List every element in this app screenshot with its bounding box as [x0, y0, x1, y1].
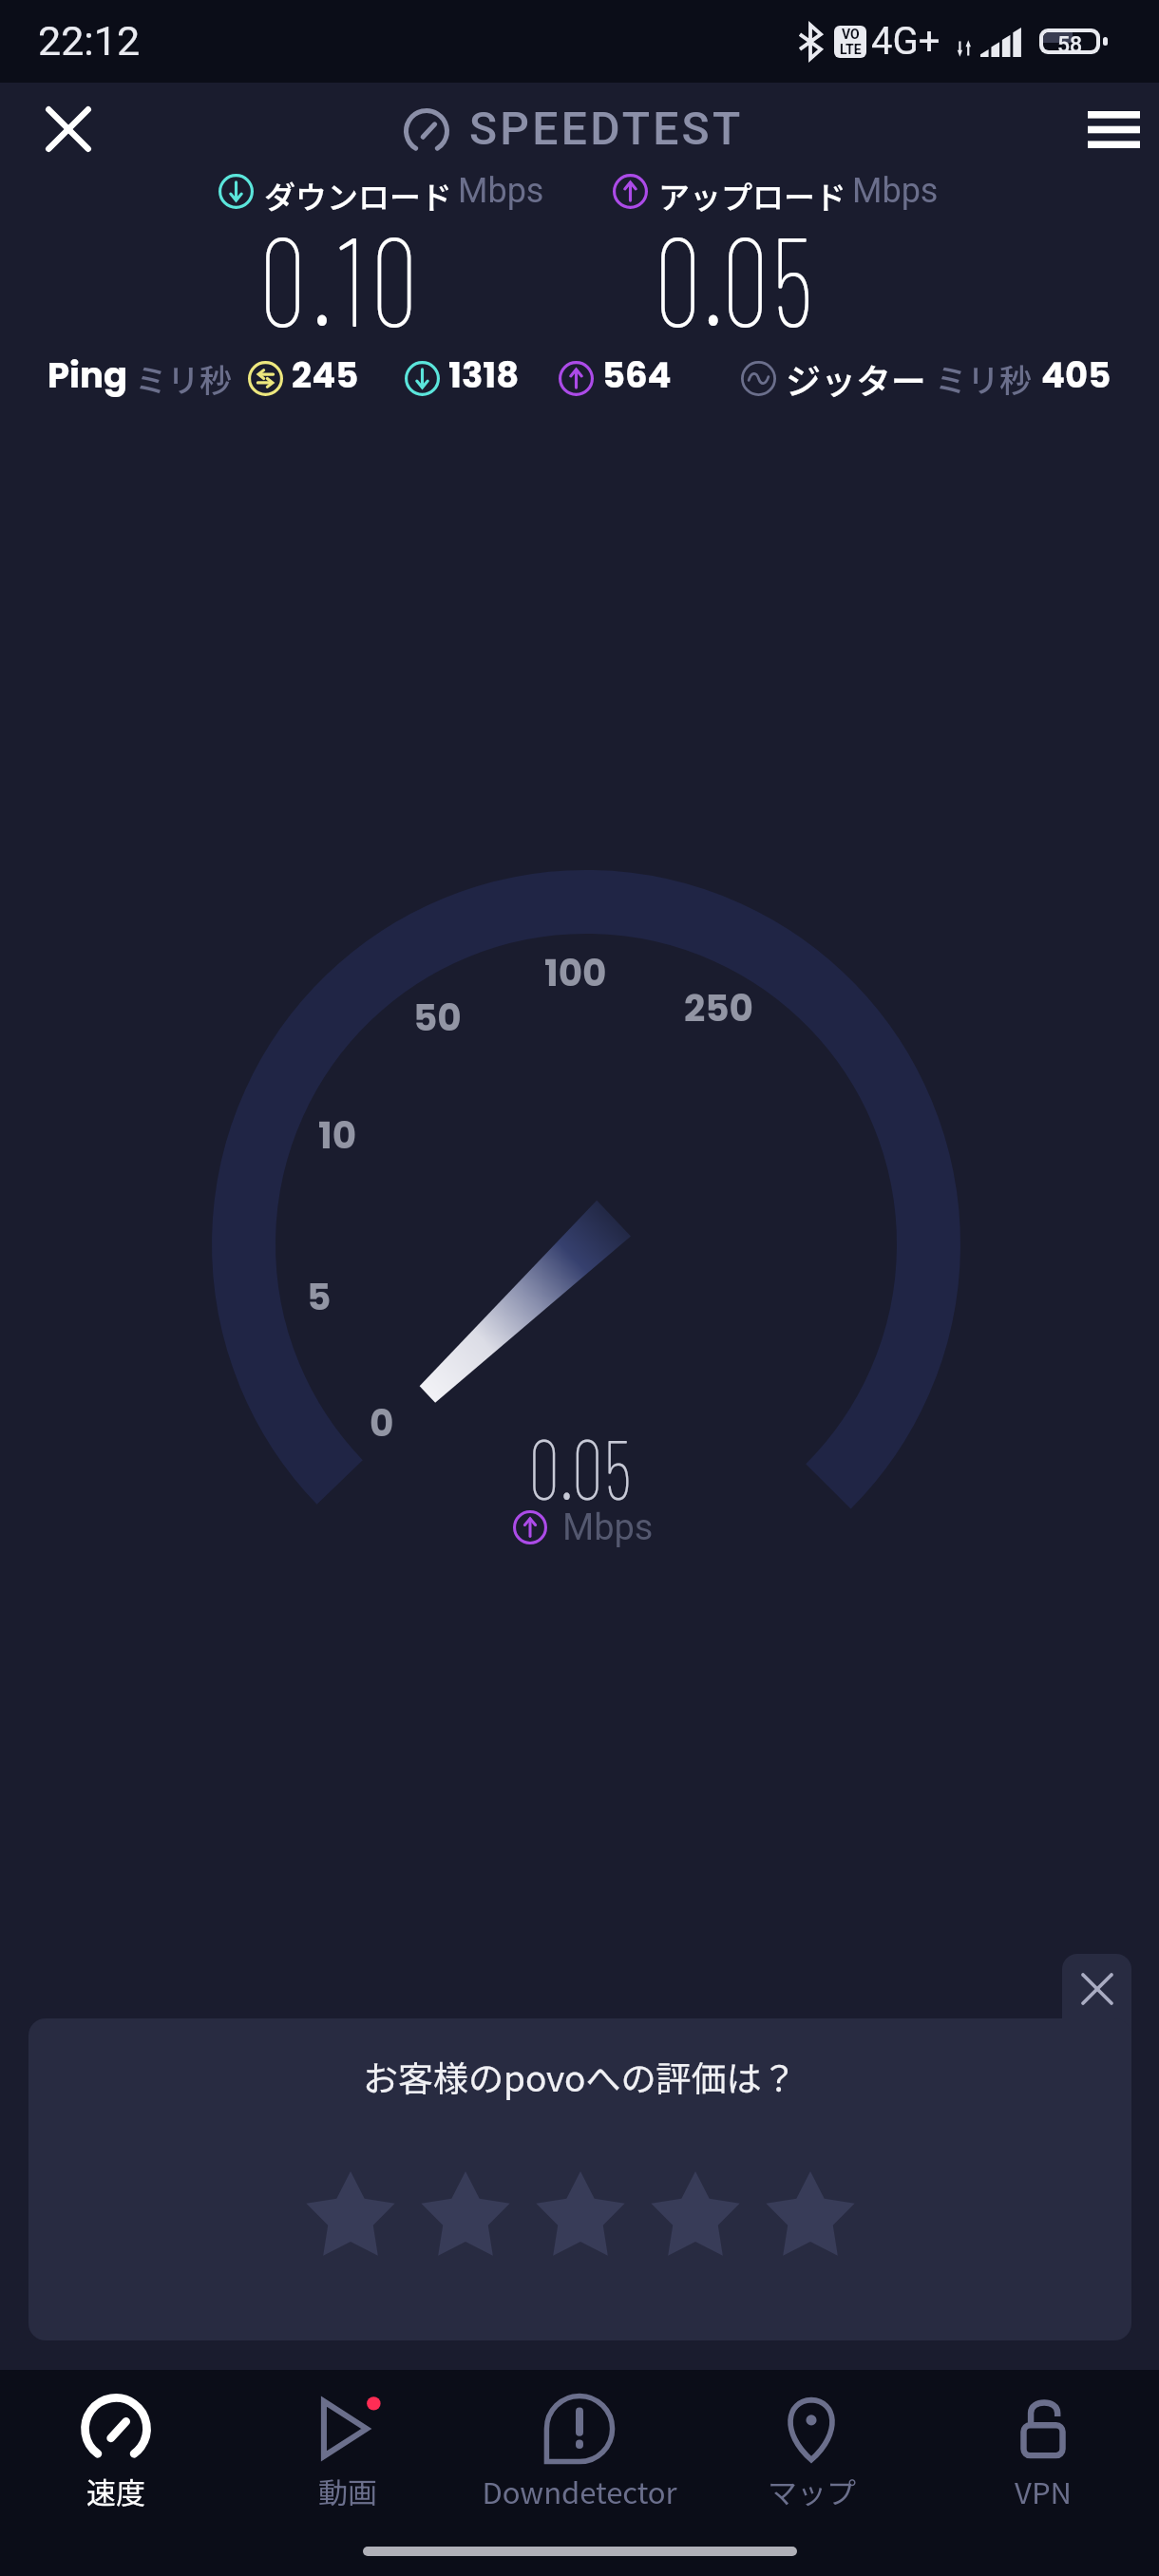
staticText: ミリ秒	[935, 355, 1032, 402]
button[interactable]: Rate 5 stars	[764, 2171, 857, 2259]
button[interactable]: 速度	[0, 2370, 232, 2522]
button[interactable]: Menu	[1066, 82, 1159, 177]
staticText: Mbps	[852, 171, 939, 211]
button[interactable]: Downdetector	[464, 2370, 695, 2522]
staticText: Ping	[47, 350, 128, 400]
button[interactable]: お客様のpovoへの評価は？	[28, 2018, 1131, 2340]
staticText: SPEEDTEST	[469, 102, 744, 155]
button[interactable]: Close	[21, 82, 116, 177]
button[interactable]: Rate 2 stars	[419, 2171, 512, 2259]
staticText: Mbps	[458, 171, 544, 211]
staticText: LTE	[840, 42, 862, 57]
staticText: 100	[544, 947, 607, 999]
staticText: 4G+	[871, 19, 940, 64]
staticText: 10	[318, 1109, 357, 1162]
staticText: Downdetector	[482, 2470, 677, 2512]
staticText: 250	[684, 982, 754, 1034]
staticText: VPN	[1015, 2470, 1072, 2512]
staticText: 0.05	[655, 200, 817, 352]
staticText: ミリ秒	[135, 355, 232, 402]
staticText: 速度	[86, 2470, 145, 2512]
staticText: 動画	[318, 2470, 377, 2512]
staticText: 5	[307, 1271, 332, 1323]
staticText: 405	[1041, 350, 1111, 400]
staticText: 58	[1057, 32, 1083, 50]
staticText: お客様のpovoへの評価は？	[363, 2051, 797, 2102]
staticText: ジッター	[786, 353, 926, 403]
staticText: 1318	[448, 350, 520, 400]
staticText: アップロード	[658, 173, 846, 218]
staticText: 0.10	[259, 200, 425, 352]
button[interactable]: Dismiss	[1062, 1954, 1131, 2039]
button[interactable]: 動画	[232, 2370, 464, 2522]
staticText: VO	[842, 27, 860, 42]
staticText: 0	[370, 1397, 394, 1449]
staticText: ダウンロード	[264, 173, 452, 218]
staticText: 564	[602, 350, 672, 400]
button[interactable]: マップ	[695, 2370, 927, 2522]
button[interactable]: Rate 3 stars	[534, 2171, 627, 2259]
staticText: 0.05	[529, 1416, 633, 1517]
staticText: 245	[292, 350, 359, 400]
staticText: 50	[413, 992, 462, 1044]
button[interactable]: Rate 1 stars	[304, 2171, 397, 2259]
staticText: Mbps	[562, 1506, 654, 1549]
staticText: 22:12	[38, 17, 141, 65]
button[interactable]: Rate 4 stars	[649, 2171, 742, 2259]
button[interactable]: VPN	[927, 2370, 1159, 2522]
staticText: マップ	[768, 2470, 856, 2512]
